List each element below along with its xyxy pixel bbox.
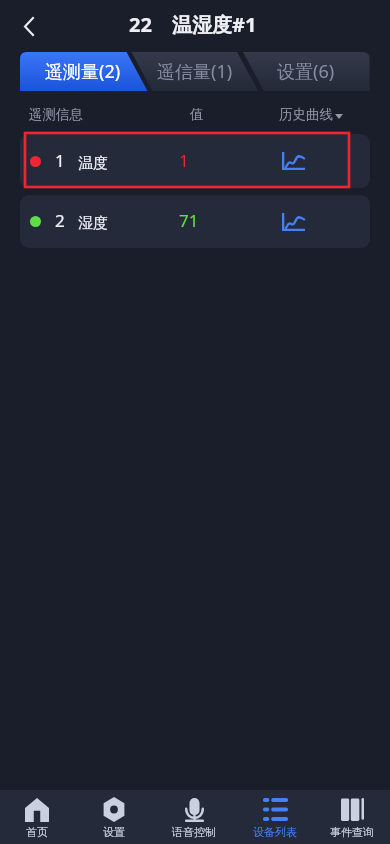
button[interactable]: 设置 (75, 791, 153, 844)
staticText: 温湿度#1 (172, 11, 257, 38)
staticText: 湿度 (78, 214, 108, 233)
staticText: 1 (179, 149, 189, 172)
button[interactable]: Back (7, 4, 51, 48)
staticText: 语音控制 (172, 825, 216, 839)
staticText: 温度 (78, 154, 108, 173)
staticText: 设置(6) (277, 59, 335, 84)
staticText: 遥测量(2) (45, 59, 121, 84)
button[interactable]: 1 (20, 134, 370, 188)
staticText: 设置 (103, 825, 125, 839)
staticText: 22 (129, 11, 152, 38)
staticText: 2 (55, 209, 65, 232)
staticText: 值 (190, 106, 204, 123)
button[interactable]: 事件查询 (313, 791, 390, 844)
button[interactable]: 遥测量(2) (28, 52, 138, 91)
button[interactable]: 遥信量(1) (140, 52, 250, 91)
staticText: 历史曲线 (279, 106, 333, 123)
button[interactable]: 设备列表 (236, 791, 314, 844)
button[interactable]: History chart (281, 209, 307, 235)
button[interactable]: 语音控制 (155, 791, 233, 844)
staticText: 1 (55, 149, 65, 172)
staticText: 遥信量(1) (157, 59, 233, 84)
button[interactable]: 首页 (0, 791, 76, 844)
button[interactable]: History chart (281, 148, 307, 174)
staticText: 71 (179, 209, 199, 232)
button[interactable]: 设置(6) (251, 52, 361, 91)
staticText: 首页 (26, 825, 48, 839)
button[interactable]: 2 (20, 195, 370, 248)
staticText: 设备列表 (253, 825, 297, 839)
staticText: 遥测信息 (29, 106, 83, 123)
staticText: 事件查询 (330, 825, 374, 839)
